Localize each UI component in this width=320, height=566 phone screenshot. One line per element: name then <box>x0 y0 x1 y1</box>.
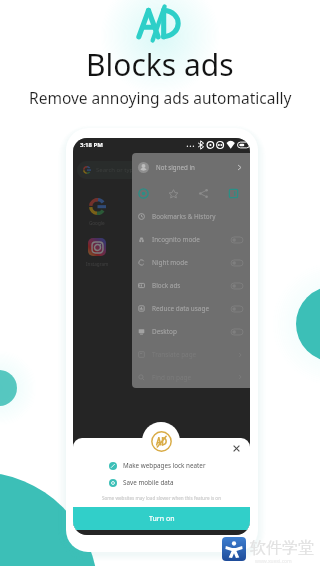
staticText: Make webpages lock neater <box>123 461 206 470</box>
staticText: 软件学堂 <box>250 538 314 558</box>
staticText: Remove annoying ads automatically <box>29 87 292 108</box>
button[interactable]: Bookmark <box>168 188 179 199</box>
button[interactable]: Close <box>230 442 243 455</box>
button[interactable]: Add tab <box>228 188 239 199</box>
staticText: Not signed in <box>156 163 195 171</box>
staticText: Some websites may load slower when this … <box>73 495 250 501</box>
button[interactable]: Desktop <box>138 320 243 343</box>
staticText: Turn on <box>149 514 175 524</box>
staticText: 3:18 PM <box>80 141 103 149</box>
staticText: Google <box>89 220 105 226</box>
button[interactable]: Block ads <box>138 274 243 297</box>
staticText: Search or type web address <box>96 166 174 174</box>
staticText: Reduce data usage <box>152 304 209 313</box>
button[interactable]: Share <box>198 188 209 199</box>
staticText: Bookmarks & History <box>152 212 216 221</box>
staticText: Desktop <box>152 327 177 336</box>
button[interactable]: Refresh <box>138 188 149 199</box>
button[interactable]: Incognito mode <box>138 228 243 251</box>
button[interactable]: Turn on <box>73 507 250 530</box>
button[interactable]: Night mode <box>138 251 243 274</box>
button[interactable]: Bookmarks & History <box>138 205 243 228</box>
button[interactable]: Not signed in <box>138 153 243 181</box>
staticText: www.xuexi.com <box>255 558 292 565</box>
button[interactable]: Reduce data usage <box>138 297 243 320</box>
staticText: Save mobile data <box>123 478 174 487</box>
staticText: Blocks ads <box>86 44 234 85</box>
staticText: Instagram <box>86 261 109 267</box>
staticText: Block ads <box>152 281 181 290</box>
staticText: Night mode <box>152 258 188 267</box>
staticText: Incognito mode <box>152 235 200 244</box>
